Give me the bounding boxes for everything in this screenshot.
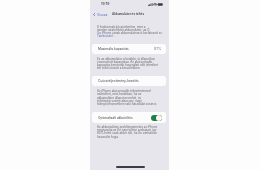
staticText: Ön iPhone-jának akkumulátora is korlátoz… [97, 31, 162, 35]
staticText: hideg környezetben való használat során … [97, 102, 157, 106]
staticText: két töltés között a készülékben. [97, 66, 141, 70]
staticText: működhet, mint korábban, ha az [97, 92, 142, 96]
staticText: 80% felett csak akkor tölt, ha Ön várhat… [97, 131, 157, 135]
button[interactable]: Optimalizált akkutöltés [92, 112, 166, 123]
staticText: Ez az akkumulátor a korábbi, új állapoth… [97, 57, 155, 61]
staticText: Az iPhone alacsonyabb teljesítménnyel [97, 89, 151, 93]
staticText: Maximális kapacitás [98, 47, 129, 51]
staticText: minden újratölthető akkumulátor, az Ö [97, 28, 150, 32]
staticText: akkumulátor állapota romlott, és [97, 96, 142, 100]
staticText: Optimalizált akkutöltés [98, 116, 133, 120]
staticText: viszonyított kapacitása. Az alacsonyabb [97, 60, 153, 64]
button[interactable]: Vissza [93, 12, 108, 17]
staticText: használni fogja. [97, 135, 119, 139]
staticText: töltöttségi szintje alacsony, vagy [97, 99, 142, 103]
staticText: Az akkumulátor-problémamentes az iPhone [97, 125, 158, 129]
staticText: Akkumulátor és töltés [112, 12, 145, 16]
staticText: megtanulja az Ön napi töltési szokásait,… [97, 128, 157, 132]
staticText: A funkciónak köszönhetően, mint a [97, 25, 146, 29]
staticText: 87% [154, 47, 162, 51]
button[interactable]: Csúcsteljesítmény-kezelés [92, 76, 166, 86]
staticText: Csúcsteljesítmény-kezelés [98, 79, 139, 83]
staticText: Vissza [97, 13, 108, 17]
button[interactable]: Maximális kapacitás [92, 44, 166, 54]
staticText: Tájékoztató… [97, 34, 116, 38]
staticText: 19:19 [101, 2, 110, 6]
button[interactable]: Optimalizált akkutöltés kapcsoló [151, 115, 162, 121]
staticText: kapacitás kevesebb használati időt jelen… [97, 63, 158, 67]
